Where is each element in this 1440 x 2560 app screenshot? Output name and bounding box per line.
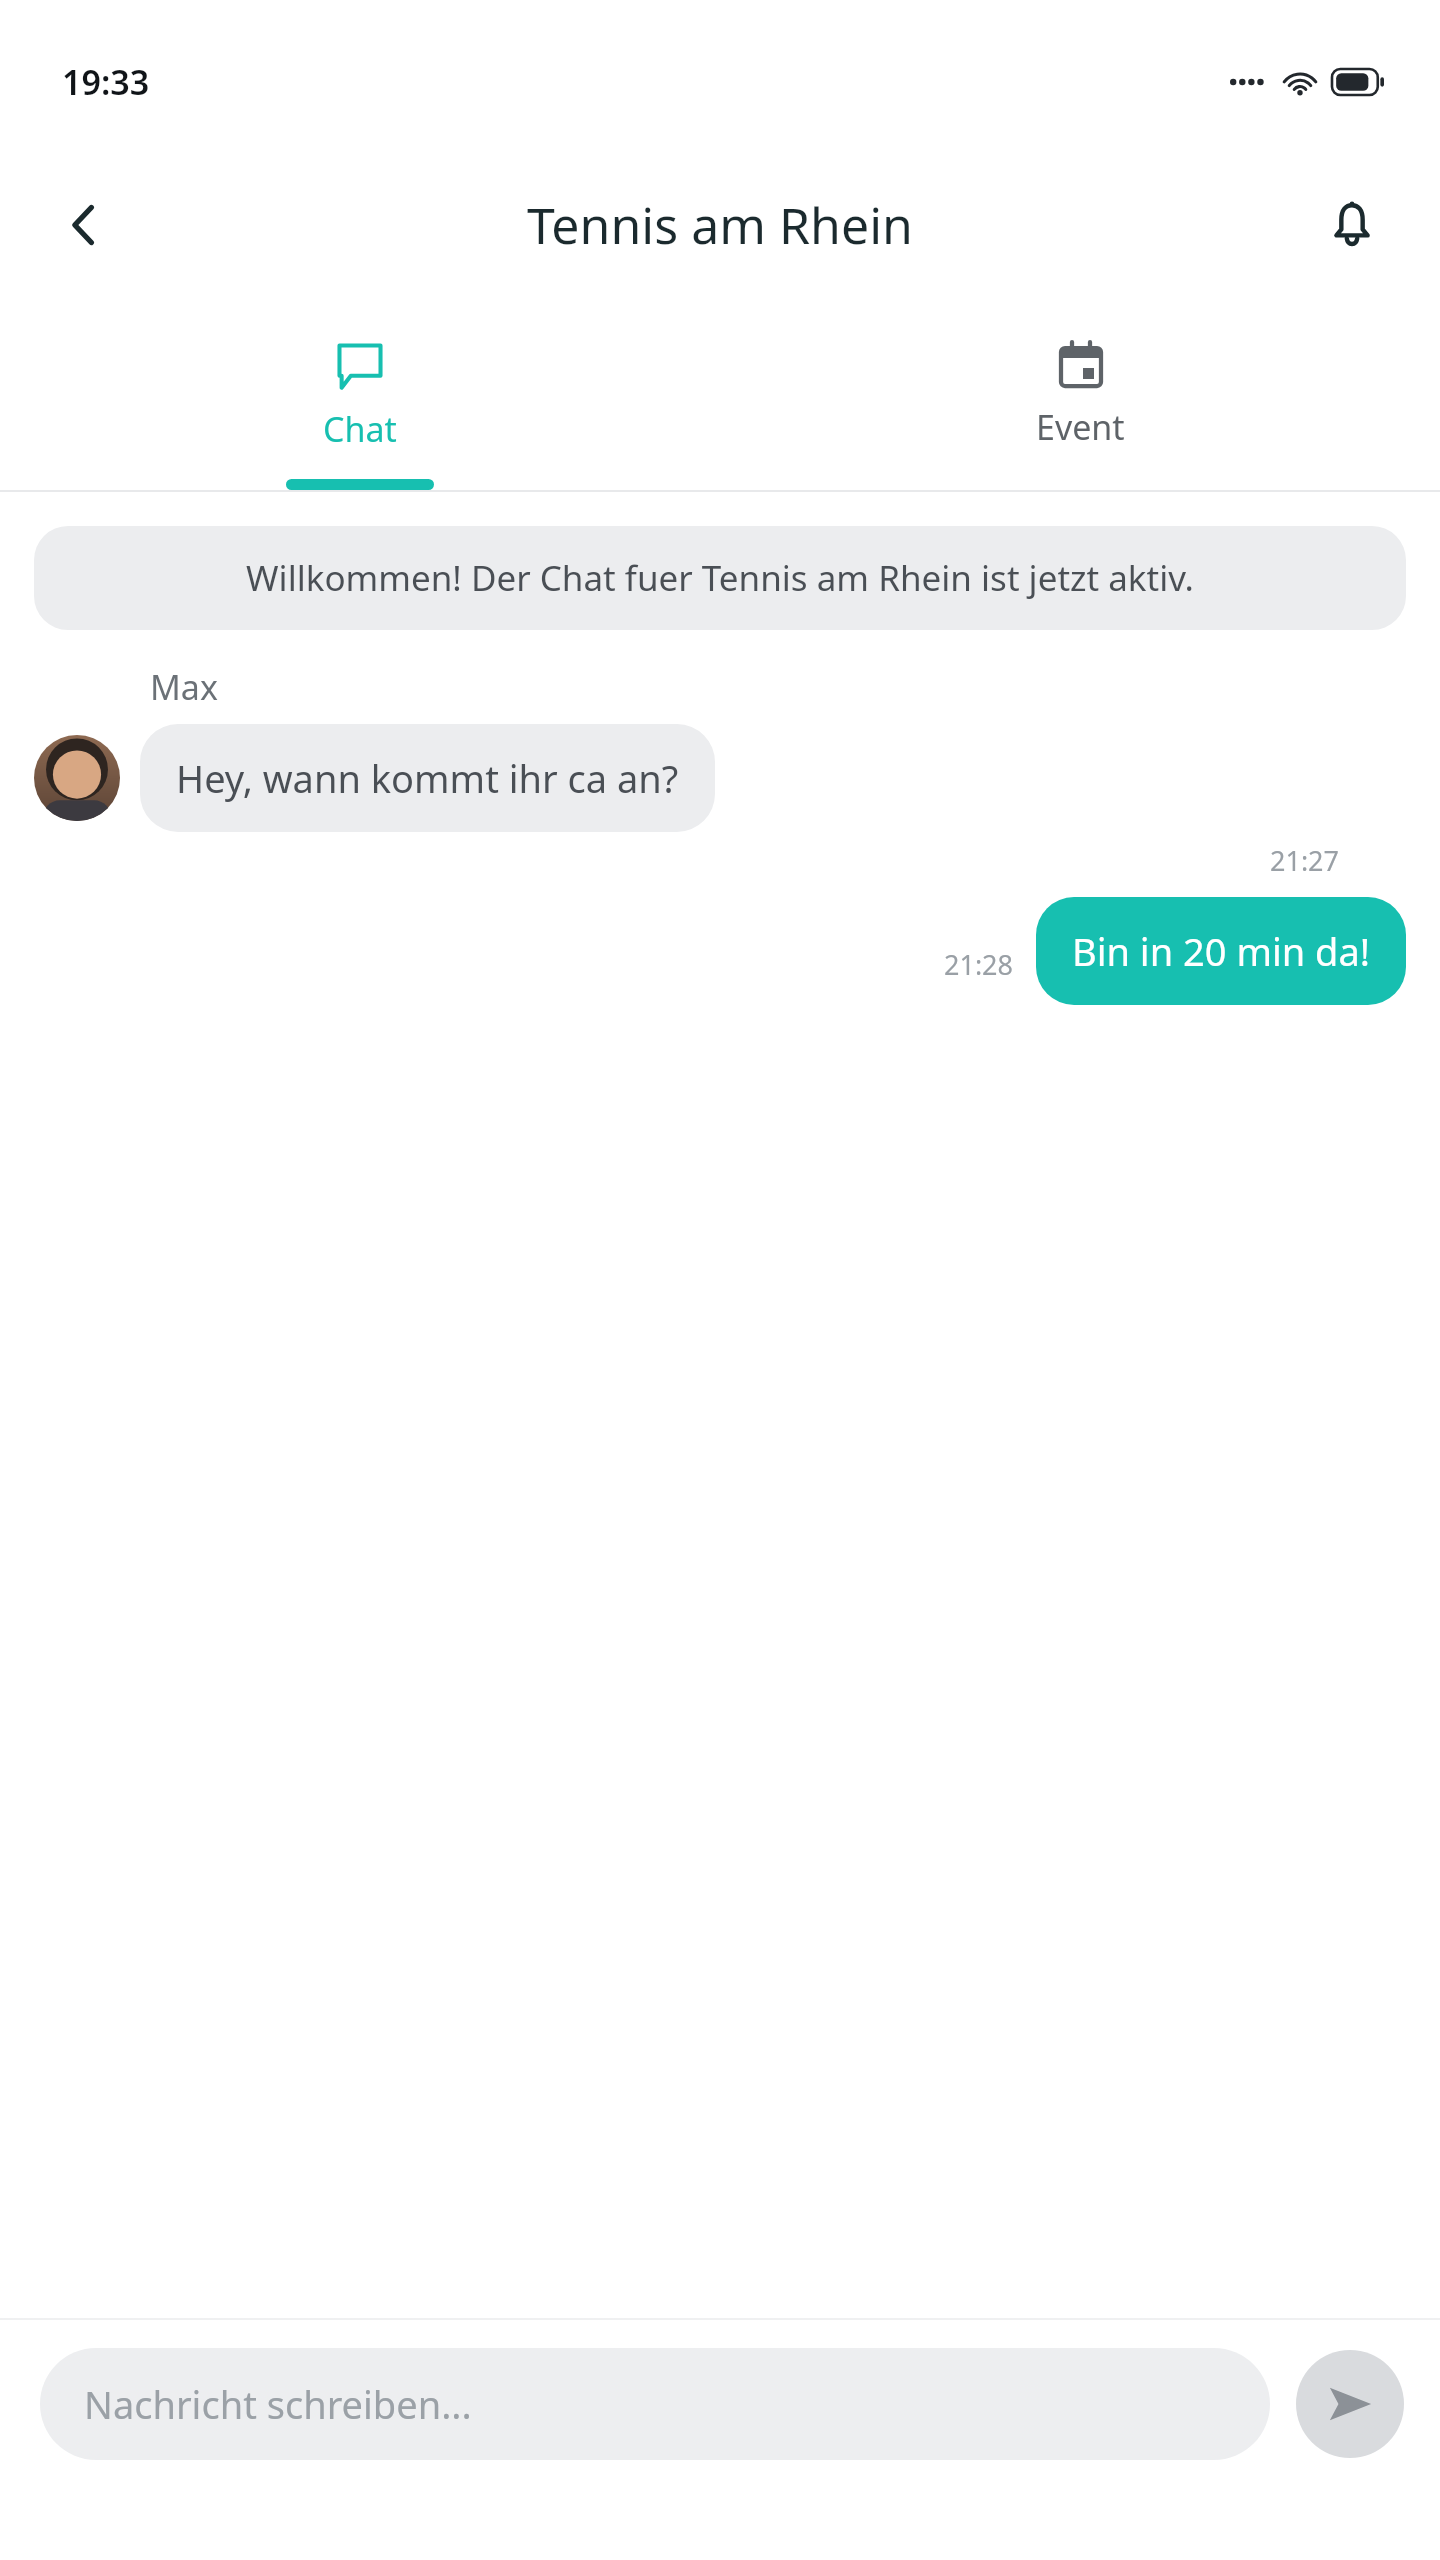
button[interactable]: Max avatar	[34, 735, 120, 821]
button[interactable]: Hey, wann kommt ihr ca an?	[140, 724, 715, 832]
button[interactable]: Nachricht schreiben...	[40, 2348, 1270, 2460]
button[interactable]: Bin in 20 min da!	[1036, 897, 1406, 1005]
staticText: 21:27	[1270, 842, 1340, 879]
staticText: Chat	[323, 406, 397, 452]
staticText: 19:33	[62, 59, 150, 105]
staticText: Nachricht schreiben...	[84, 2378, 472, 2430]
staticText: Tennis am Rhein	[527, 191, 913, 259]
button[interactable]: Send	[1296, 2350, 1404, 2458]
button[interactable]: Notifications	[1304, 177, 1400, 273]
staticText: Event	[1036, 404, 1125, 450]
button[interactable]: Event	[720, 300, 1440, 490]
staticText: Willkommen! Der Chat fuer Tennis am Rhei…	[74, 554, 1366, 602]
button[interactable]: Back	[36, 177, 132, 273]
button[interactable]: Chat	[0, 300, 720, 490]
staticText: Max	[150, 664, 218, 710]
button[interactable]: Willkommen! Der Chat fuer Tennis am Rhei…	[34, 526, 1406, 630]
staticText: Bin in 20 min da!	[1072, 925, 1370, 977]
staticText: 21:28	[944, 946, 1014, 983]
staticText: Hey, wann kommt ihr ca an?	[176, 752, 679, 804]
